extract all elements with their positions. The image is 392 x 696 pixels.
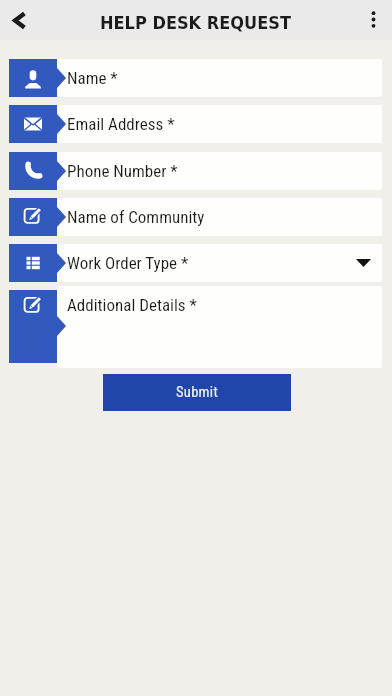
staticText: Phone Number * [67,161,178,181]
staticText: Submit [176,384,219,401]
staticText: Name of Community [67,207,205,227]
button[interactable]: Submit [103,374,291,411]
staticText: Work Order Type * [67,253,189,273]
button[interactable]: Additional Details * [57,286,382,368]
staticText: Name * [67,68,118,88]
button[interactable]: Name * [57,59,382,97]
button[interactable]: Name of Community [57,198,382,236]
staticText: Email Address * [67,114,175,134]
button[interactable]: Phone Number * [57,152,382,190]
button[interactable]: Email Address * [57,105,382,143]
button[interactable]: Work Order Type * [57,244,382,282]
button[interactable] [0,0,40,40]
button[interactable] [352,0,392,40]
staticText: Additional Details * [67,295,197,315]
staticText: HELP DESK REQUEST [100,12,292,33]
